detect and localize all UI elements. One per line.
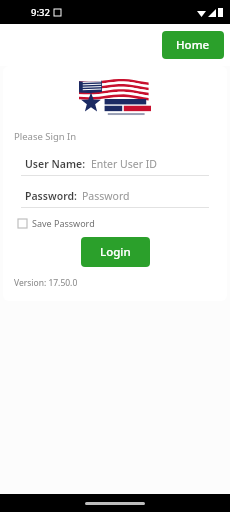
button[interactable]: Login [81,237,150,267]
staticText: Home [176,37,210,53]
staticText: Version: 17.50.0 [14,277,78,289]
staticText: Password [82,189,130,203]
button[interactable]: Password: [3,188,227,207]
staticText: Password: [25,189,77,203]
staticText: User Name: [25,157,86,171]
staticText: Please Sign In [14,130,77,143]
button[interactable]: Home [162,31,224,59]
button[interactable]: User Name: [3,156,227,175]
staticText: 9:32 [31,6,50,19]
staticText: Login [100,244,131,260]
staticText: Save Password [32,217,95,229]
staticText: Enter User ID [91,157,158,171]
button[interactable]: Save Password [16,215,97,231]
